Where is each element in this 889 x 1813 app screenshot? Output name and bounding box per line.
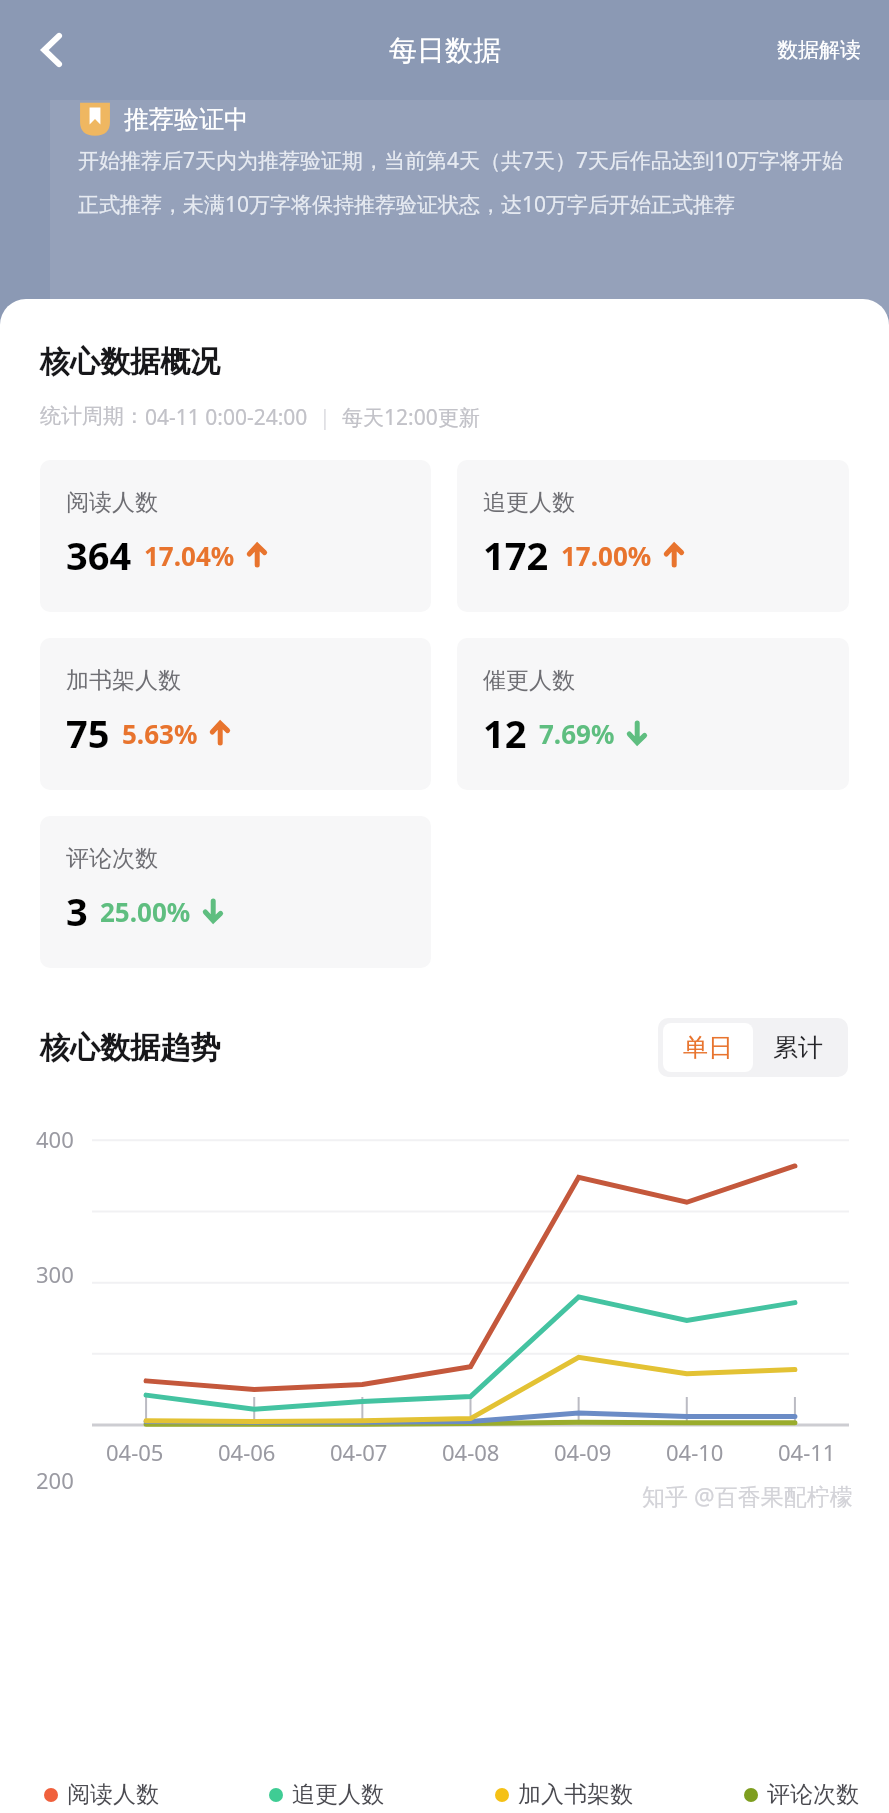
staticText: 04-11 0:00-24:00 xyxy=(145,403,308,432)
staticText: 04-08 xyxy=(442,1437,500,1467)
staticText: 17.00% xyxy=(561,538,652,573)
staticText: 评论次数 xyxy=(767,1780,859,1809)
staticText: 04-07 xyxy=(330,1437,388,1467)
staticText: 200 xyxy=(36,1465,74,1495)
staticText: 评论次数 xyxy=(66,844,158,873)
staticText: 04-11 xyxy=(778,1437,836,1467)
button[interactable]: 追更人数 xyxy=(457,460,849,612)
button[interactable]: 阅读人数 xyxy=(40,460,431,612)
staticText: 25.00% xyxy=(100,894,191,929)
staticText: 17.04% xyxy=(144,538,235,573)
staticText: 催更人数 xyxy=(483,666,575,695)
staticText: 172 xyxy=(483,529,549,581)
staticText: 统计周期： xyxy=(40,403,145,429)
button[interactable]: 加书架人数 xyxy=(40,638,431,790)
staticText: 单日 xyxy=(683,1032,733,1063)
staticText: 5.63% xyxy=(122,716,198,751)
staticText: 推荐验证中 xyxy=(124,104,249,135)
staticText: 04-10 xyxy=(666,1437,724,1467)
staticText: 开始推荐后7天内为推荐验证期，当前第4天（共7天）7天后作品达到10万字将开始正… xyxy=(78,146,844,218)
staticText: 3 xyxy=(66,885,88,937)
staticText: 300 xyxy=(36,1259,74,1289)
staticText: 数据解读 xyxy=(777,37,861,63)
staticText: 核心数据趋势 xyxy=(40,1029,220,1067)
staticText: 加入书架数 xyxy=(518,1780,633,1809)
staticText: 04-09 xyxy=(554,1437,612,1467)
staticText: 04-05 xyxy=(106,1437,164,1467)
staticText: 12 xyxy=(483,707,527,759)
button[interactable]: 催更人数 xyxy=(457,638,849,790)
staticText: 04-06 xyxy=(218,1437,276,1467)
staticText: 阅读人数 xyxy=(66,488,158,517)
button[interactable]: Back xyxy=(20,18,84,82)
staticText: 核心数据概况 xyxy=(40,343,220,381)
staticText: 7.69% xyxy=(539,716,615,751)
staticText: 知乎 @百香果配柠檬 xyxy=(642,1480,853,1511)
staticText: 阅读人数 xyxy=(67,1780,159,1809)
staticText: 每天12:00更新 xyxy=(342,403,480,432)
staticText: 75 xyxy=(66,707,110,759)
staticText: 364 xyxy=(66,529,132,581)
button[interactable]: 累计 xyxy=(753,1023,843,1072)
button[interactable]: 评论次数 xyxy=(40,816,431,968)
staticText: 加书架人数 xyxy=(66,666,181,695)
staticText: | xyxy=(308,403,342,432)
staticText: 每日数据 xyxy=(389,33,501,68)
staticText: 追更人数 xyxy=(483,488,575,517)
button[interactable]: 单日 xyxy=(663,1023,753,1072)
staticText: 400 xyxy=(36,1124,74,1154)
staticText: 累计 xyxy=(773,1032,823,1063)
button[interactable]: 数据解读 xyxy=(771,31,867,69)
staticText: 追更人数 xyxy=(292,1780,384,1809)
